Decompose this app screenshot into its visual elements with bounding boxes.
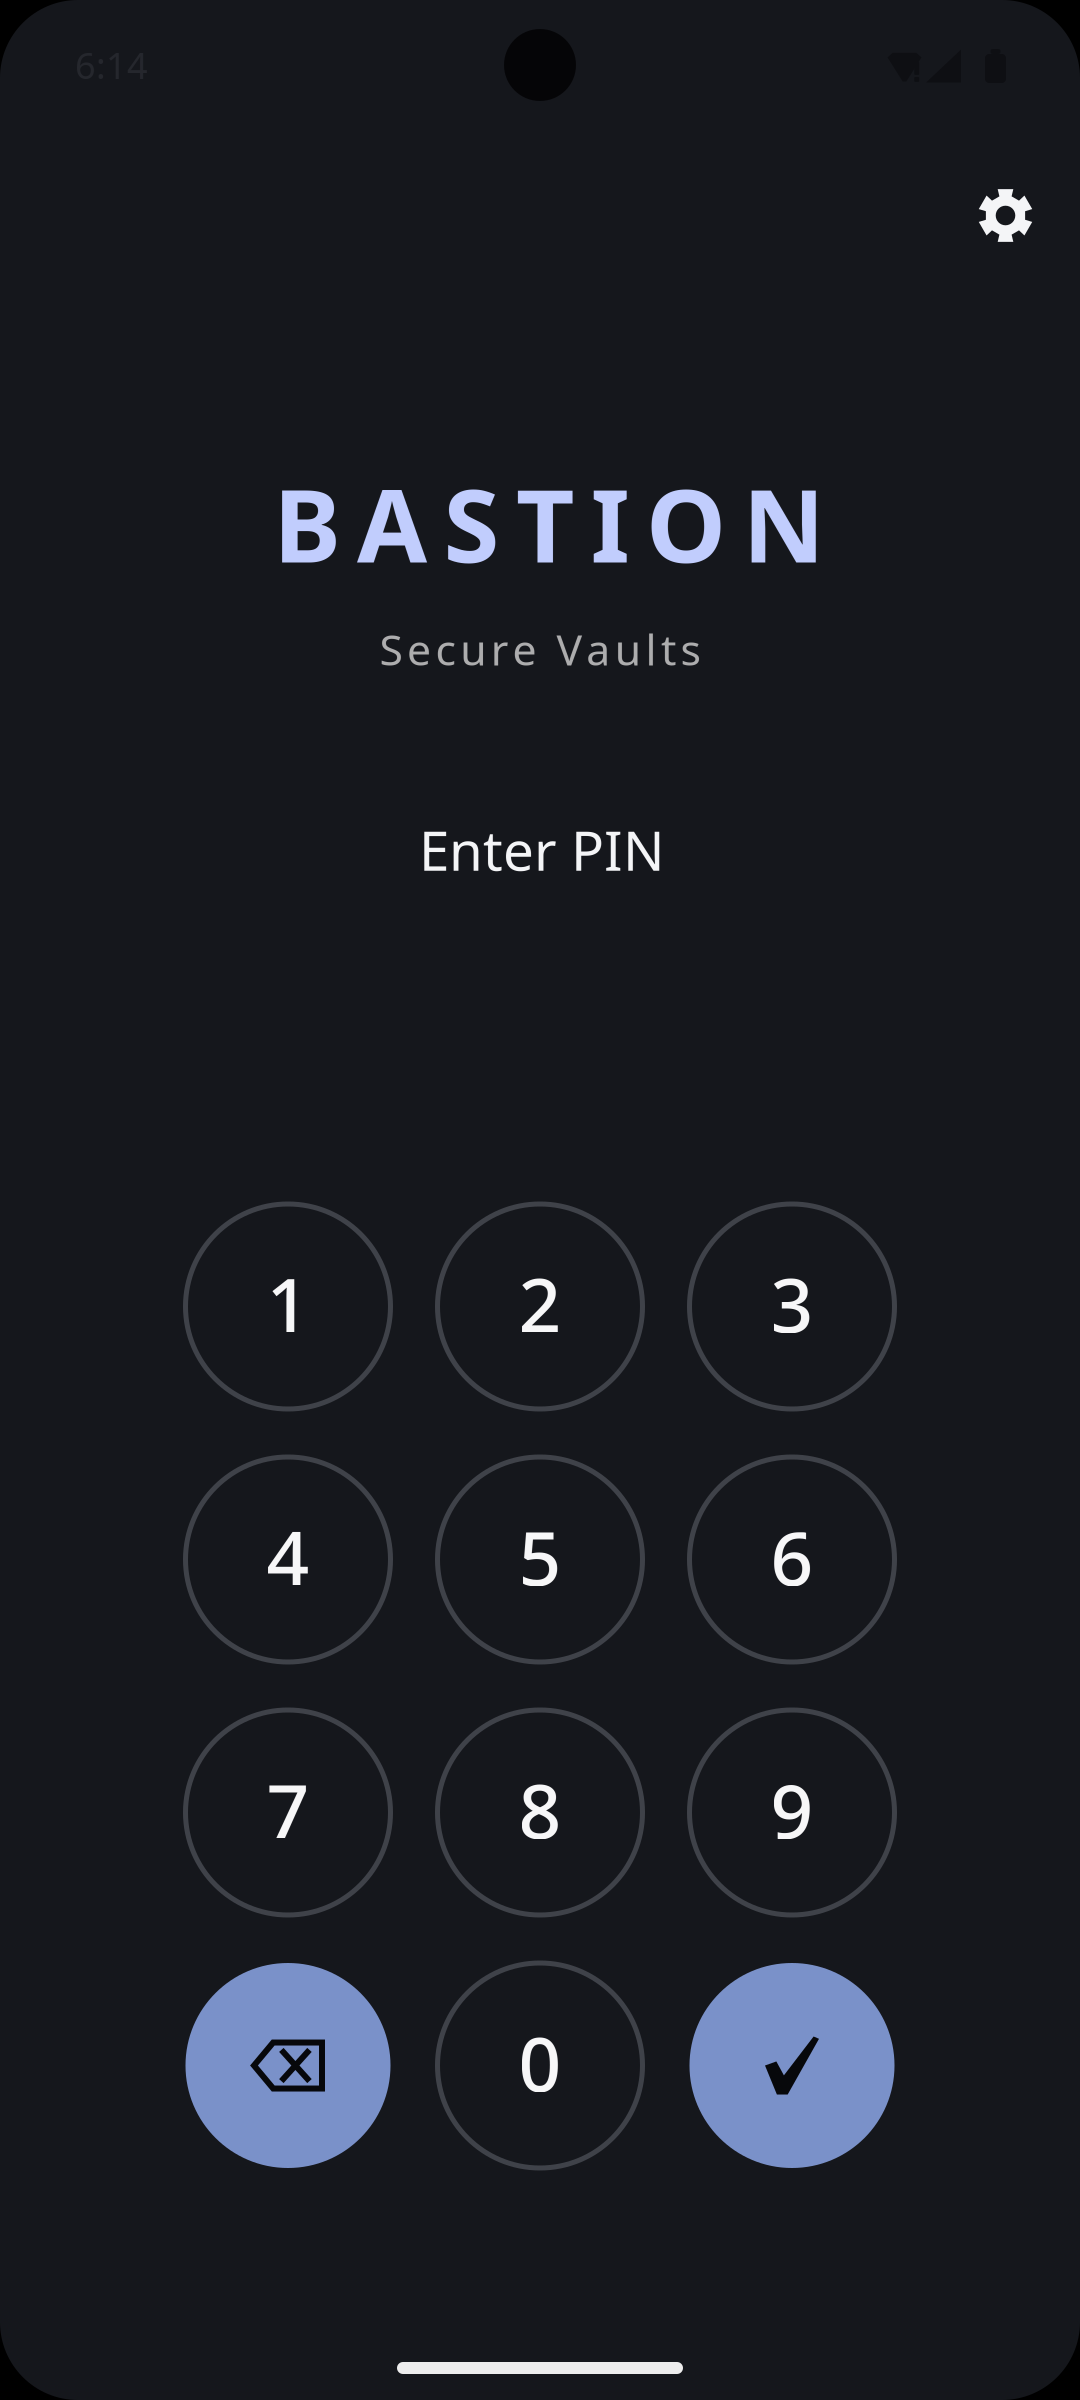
- staticText: 5: [518, 1507, 561, 1606]
- staticText: 1: [266, 1254, 309, 1353]
- staticText: Enter PIN: [419, 813, 665, 886]
- staticText: Secure Vaults: [379, 621, 701, 677]
- staticText: 3: [770, 1254, 813, 1353]
- button[interactable]: 8: [437, 1710, 642, 1915]
- button[interactable]: 9: [689, 1710, 894, 1915]
- staticText: 6:14: [75, 41, 148, 89]
- staticText: 9: [770, 1760, 813, 1859]
- staticText: 2: [518, 1254, 561, 1353]
- button[interactable]: Confirm: [689, 1963, 894, 2168]
- button[interactable]: Settings: [958, 168, 1053, 263]
- button[interactable]: 7: [185, 1710, 390, 1915]
- button[interactable]: 6: [689, 1457, 894, 1662]
- staticText: 4: [266, 1507, 309, 1606]
- button[interactable]: 2: [437, 1204, 642, 1409]
- button[interactable]: Delete: [185, 1963, 390, 2168]
- button[interactable]: 4: [185, 1457, 390, 1662]
- button[interactable]: 3: [689, 1204, 894, 1409]
- staticText: 7: [266, 1760, 309, 1859]
- staticText: 8: [518, 1760, 561, 1859]
- button[interactable]: 0: [437, 1963, 642, 2168]
- button[interactable]: 5: [437, 1457, 642, 1662]
- button[interactable]: 1: [185, 1204, 390, 1409]
- staticText: 0: [518, 2013, 561, 2112]
- staticText: BASTION: [273, 456, 824, 591]
- staticText: 6: [770, 1507, 813, 1606]
